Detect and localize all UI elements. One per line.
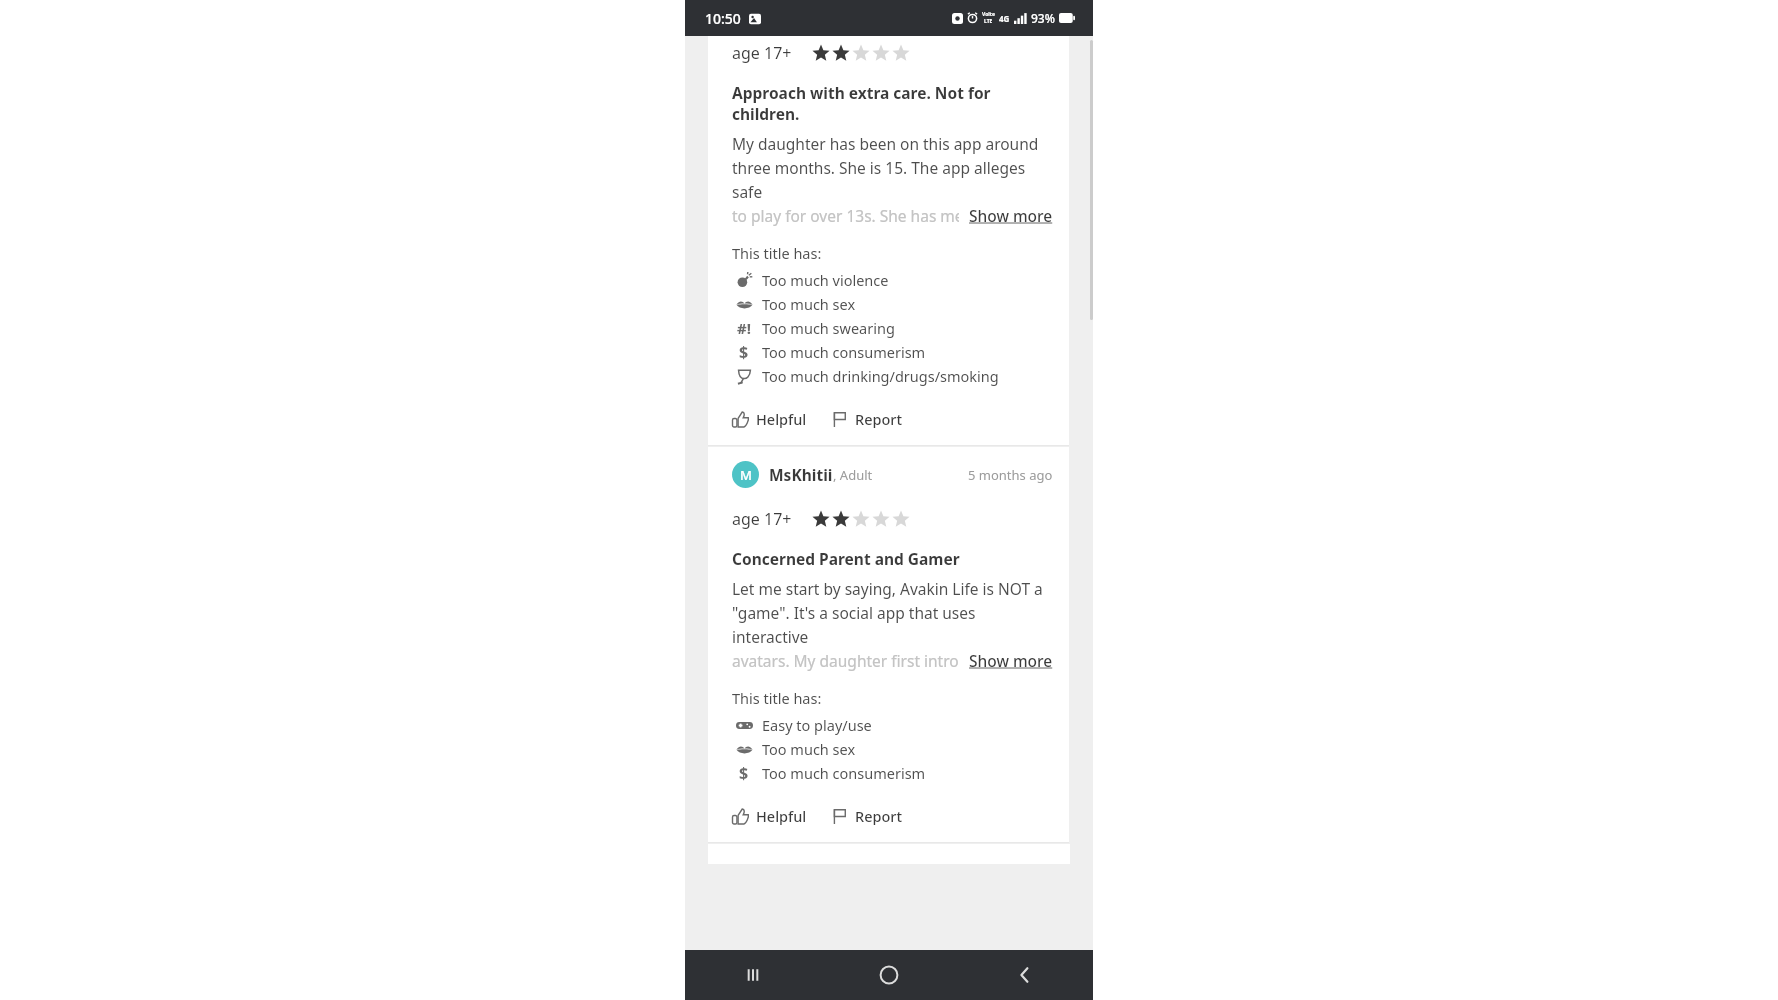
staticText: Too much swearing (762, 318, 895, 338)
staticText: This title has: (732, 688, 822, 708)
button[interactable]: Too much sex (732, 292, 1053, 316)
button[interactable]: Show more (959, 205, 1053, 226)
staticText: Easy to play/use (762, 715, 872, 735)
button[interactable]: $ (732, 340, 1053, 364)
staticText: This title has: (732, 243, 822, 263)
staticText: three months. She is 15. The app alleges… (732, 157, 1053, 202)
button[interactable]: #! (732, 316, 1053, 340)
button[interactable]: Recent apps (685, 950, 821, 1000)
staticText: $ (739, 341, 749, 363)
button[interactable]: Report (831, 405, 903, 433)
staticText: $ (739, 762, 749, 784)
staticText: Show more (969, 205, 1053, 226)
staticText: MsKhitii (769, 464, 833, 485)
staticText: "game". It's a social app that uses inte… (732, 602, 1053, 647)
staticText: Too much sex (762, 739, 856, 759)
staticText: My daughter has been on this app around (732, 133, 1039, 154)
button[interactable]: Home (821, 950, 957, 1000)
staticText: Concerned Parent and Gamer (732, 548, 960, 569)
staticText: Report (855, 806, 903, 826)
staticText: Too much drinking/drugs/smoking (762, 366, 999, 386)
staticText: Show more (969, 650, 1053, 671)
staticText: LTE (984, 18, 993, 25)
staticText: Too much consumerism (762, 342, 926, 362)
button[interactable]: Too much violence (732, 268, 1053, 292)
staticText: Helpful (756, 409, 807, 429)
staticText: avatars. My daughter first introdu (732, 650, 978, 671)
button[interactable]: Helpful (732, 802, 807, 830)
staticText: 5 months ago (968, 466, 1053, 484)
button[interactable]: Show more (959, 650, 1053, 671)
button[interactable]: Back (957, 950, 1093, 1000)
button[interactable]: Too much sex (732, 737, 1053, 761)
button[interactable]: $ (732, 761, 1053, 785)
staticText: to play for over 13s. She has met o (732, 205, 983, 226)
staticText: Helpful (756, 806, 807, 826)
staticText: Too much sex (762, 294, 856, 314)
staticText: 93% (1031, 10, 1055, 26)
staticText: Report (855, 409, 903, 429)
button[interactable]: Helpful (732, 405, 807, 433)
staticText: Approach with extra care. Not for childr… (732, 82, 1053, 124)
button[interactable]: Report (831, 802, 903, 830)
staticText: , Adult (833, 466, 873, 484)
staticText: M (740, 466, 752, 484)
staticText: age 17+ (732, 508, 792, 530)
button[interactable]: Easy to play/use (732, 713, 1053, 737)
staticText: age 17+ (732, 42, 792, 64)
staticText: Let me start by saying, Avakin Life is N… (732, 578, 1043, 599)
staticText: Volte (982, 11, 995, 18)
staticText: #! (737, 318, 751, 338)
staticText: 10:50 (705, 9, 741, 28)
staticText: Too much violence (762, 270, 889, 290)
staticText: Too much consumerism (762, 763, 926, 783)
button[interactable]: Too much drinking/drugs/smoking (732, 364, 1053, 388)
staticText: 4G (999, 13, 1010, 24)
